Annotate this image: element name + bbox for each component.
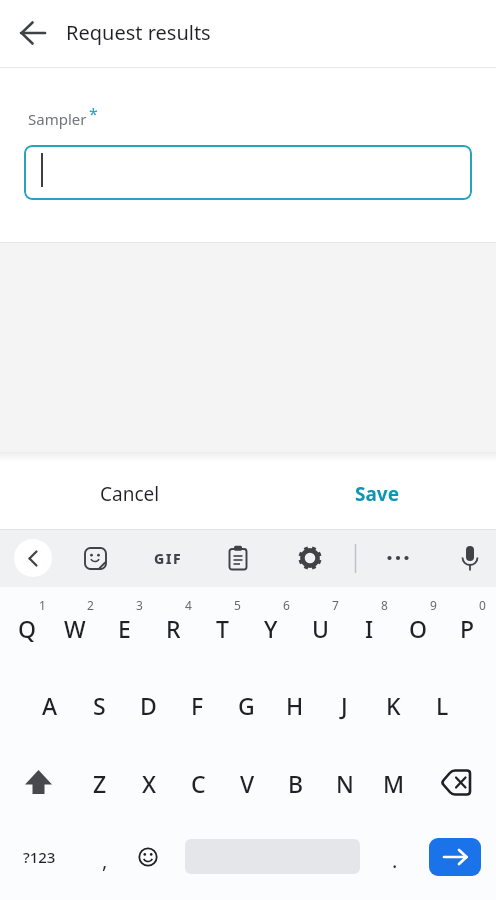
staticText: 3: [136, 597, 143, 613]
button[interactable]: G: [186, 681, 306, 729]
staticText: T: [216, 613, 229, 644]
button[interactable]: T: [162, 604, 282, 652]
staticText: V: [240, 768, 255, 799]
staticText: Save: [355, 481, 400, 507]
staticText: B: [288, 768, 304, 799]
button[interactable]: N: [285, 759, 405, 807]
staticText: L: [436, 690, 449, 721]
staticText: C: [191, 768, 206, 799]
button[interactable]: [432, 759, 480, 807]
button[interactable]: [376, 536, 420, 580]
button[interactable]: Save: [317, 470, 437, 518]
button[interactable]: ?123: [0, 833, 99, 881]
staticText: Request results: [66, 19, 211, 46]
staticText: GIF: [154, 549, 183, 568]
staticText: A: [42, 690, 58, 721]
staticText: *: [89, 103, 98, 123]
button[interactable]: [128, 836, 168, 878]
staticText: X: [142, 768, 157, 799]
button[interactable]: K: [333, 681, 453, 729]
button[interactable]: Cancel: [70, 470, 190, 518]
button[interactable]: [288, 536, 332, 580]
staticText: U: [312, 613, 329, 644]
button[interactable]: A: [0, 681, 110, 729]
button[interactable]: D: [88, 681, 208, 729]
staticText: W: [64, 613, 86, 644]
button[interactable]: I: [309, 604, 429, 652]
staticText: J: [341, 690, 348, 721]
staticText: Q: [18, 613, 37, 644]
staticText: .: [392, 847, 398, 874]
button[interactable]: L: [382, 681, 496, 729]
staticText: 5: [234, 597, 241, 613]
button[interactable]: ,: [45, 836, 165, 884]
button[interactable]: Y: [211, 604, 331, 652]
staticText: 2: [87, 597, 94, 613]
button[interactable]: P: [407, 604, 496, 652]
button[interactable]: [14, 759, 62, 807]
staticText: Cancel: [100, 481, 160, 507]
button[interactable]: V: [187, 759, 307, 807]
staticText: 0: [479, 597, 486, 613]
button[interactable]: U: [260, 604, 380, 652]
button[interactable]: O: [358, 604, 478, 652]
button[interactable]: F: [137, 681, 257, 729]
staticText: 4: [185, 597, 192, 613]
button[interactable]: M: [334, 759, 454, 807]
staticText: R: [166, 613, 181, 644]
button[interactable]: W: [15, 604, 135, 652]
staticText: 9: [430, 597, 437, 613]
button[interactable]: X: [89, 759, 209, 807]
button[interactable]: S: [39, 681, 159, 729]
button[interactable]: B: [236, 759, 356, 807]
button[interactable]: [429, 838, 481, 876]
staticText: P: [460, 613, 475, 644]
button[interactable]: C: [138, 759, 258, 807]
staticText: ?123: [23, 847, 56, 867]
button[interactable]: [145, 536, 189, 580]
staticText: N: [336, 768, 354, 799]
button[interactable]: Q: [0, 604, 87, 652]
staticText: K: [386, 690, 401, 721]
button[interactable]: E: [64, 604, 184, 652]
staticText: Y: [264, 613, 278, 644]
staticText: 1: [39, 597, 46, 613]
staticText: O: [409, 613, 428, 644]
button[interactable]: [216, 536, 260, 580]
staticText: G: [238, 690, 255, 721]
button[interactable]: J: [284, 681, 404, 729]
staticText: H: [286, 690, 304, 721]
button[interactable]: [14, 539, 52, 577]
staticText: ,: [102, 847, 108, 874]
staticText: S: [93, 690, 106, 721]
staticText: M: [383, 768, 405, 799]
staticText: E: [118, 613, 131, 644]
button[interactable]: Z: [40, 759, 160, 807]
staticText: Z: [93, 768, 107, 799]
staticText: D: [140, 690, 157, 721]
staticText: 6: [283, 597, 290, 613]
button[interactable]: R: [113, 604, 233, 652]
button[interactable]: [448, 536, 492, 580]
button[interactable]: [11, 11, 55, 55]
button[interactable]: .: [335, 836, 455, 884]
staticText: 7: [332, 597, 339, 613]
button[interactable]: [24, 145, 472, 200]
staticText: F: [191, 690, 204, 721]
staticText: I: [365, 613, 374, 644]
button[interactable]: H: [235, 681, 355, 729]
button[interactable]: [73, 536, 117, 580]
staticText: Sampler: [28, 109, 87, 129]
staticText: 8: [381, 597, 388, 613]
